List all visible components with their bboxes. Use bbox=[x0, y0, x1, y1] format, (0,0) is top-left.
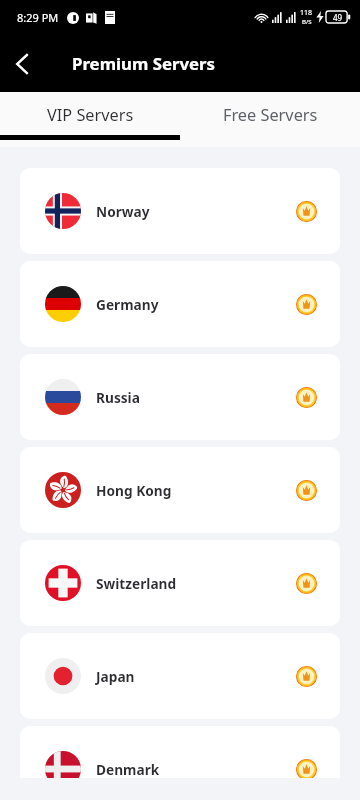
staticText: Denmark bbox=[96, 760, 160, 778]
staticText: Germany bbox=[96, 295, 159, 314]
button[interactable]: Germany bbox=[20, 261, 340, 347]
staticText: Hong Kong bbox=[96, 481, 172, 500]
button[interactable]: Free Servers bbox=[180, 92, 360, 147]
button[interactable]: Back bbox=[0, 41, 44, 85]
staticText: Free Servers bbox=[223, 104, 318, 126]
button[interactable]: Norway bbox=[20, 168, 340, 254]
staticText: B/S bbox=[302, 18, 312, 26]
staticText: 118 bbox=[300, 8, 313, 18]
button[interactable]: VIP Servers bbox=[0, 92, 180, 147]
staticText: Premium Servers bbox=[72, 52, 216, 75]
staticText: 8:29 PM bbox=[17, 10, 59, 25]
staticText: Norway bbox=[96, 202, 150, 221]
button[interactable]: Denmark bbox=[20, 726, 340, 778]
button[interactable]: Switzerland bbox=[20, 540, 340, 626]
button[interactable]: Russia bbox=[20, 354, 340, 440]
staticText: Japan bbox=[96, 667, 135, 686]
button[interactable]: Japan bbox=[20, 633, 340, 719]
staticText: VIP Servers bbox=[47, 104, 134, 126]
staticText: 49 bbox=[333, 12, 343, 23]
staticText: Switzerland bbox=[96, 574, 177, 593]
staticText: Russia bbox=[96, 388, 140, 407]
button[interactable]: Hong Kong bbox=[20, 447, 340, 533]
